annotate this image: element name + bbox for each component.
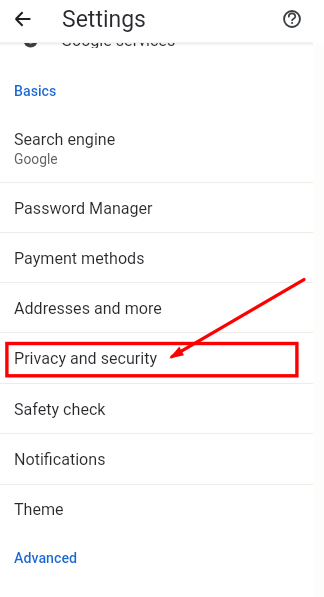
staticText: Notifications: [14, 450, 106, 469]
staticText: Payment methods: [14, 249, 145, 268]
staticText: Google services: [61, 31, 176, 48]
staticText: Password Manager: [14, 199, 153, 218]
button[interactable]: Search engine: [0, 116, 324, 182]
button[interactable]: Notifications: [0, 434, 324, 485]
button[interactable]: Payment methods: [0, 233, 324, 283]
button[interactable]: Google services: [0, 0, 324, 48]
staticText: Privacy and security: [14, 349, 158, 368]
staticText: Theme: [14, 500, 64, 519]
button[interactable]: Privacy and security: [0, 333, 324, 384]
button[interactable]: Back: [9, 5, 37, 33]
button[interactable]: Safety check: [0, 384, 324, 434]
staticText: Safety check: [14, 400, 106, 419]
button[interactable]: Theme: [0, 484, 324, 534]
staticText: Addresses and more: [14, 299, 162, 318]
staticText: Advanced: [14, 550, 78, 567]
staticText: Search engine: [14, 130, 116, 149]
button[interactable]: Help: [281, 8, 303, 30]
button[interactable]: Password Manager: [0, 183, 324, 233]
staticText: Settings: [62, 6, 146, 33]
button[interactable]: Addresses and more: [0, 283, 324, 333]
staticText: Google: [14, 151, 58, 167]
staticText: Basics: [14, 83, 57, 100]
